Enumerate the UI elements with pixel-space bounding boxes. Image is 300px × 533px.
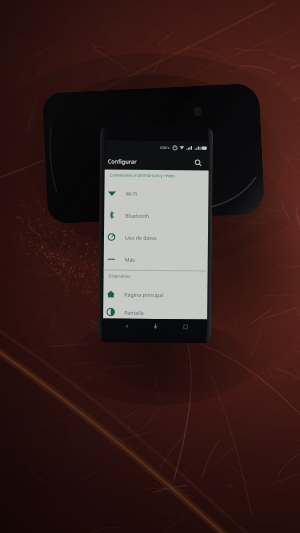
button[interactable]: Inicio xyxy=(148,319,162,333)
staticText: 5:49 xyxy=(199,145,207,150)
button[interactable]: Pantalla xyxy=(103,304,207,320)
staticText: Wi-Fi xyxy=(125,190,137,197)
button[interactable]: Buscar xyxy=(192,156,205,169)
staticText: Más xyxy=(125,256,136,263)
staticText: Configurar xyxy=(108,157,137,166)
staticText: 63B/s xyxy=(160,145,170,150)
staticText: Conexiones inalámbricas y redes xyxy=(110,172,176,179)
staticText: Dispositivo xyxy=(108,273,132,280)
staticText: Pantalla xyxy=(124,309,144,316)
staticText: Uso de datos xyxy=(125,234,157,241)
button[interactable]: Wi-Fi xyxy=(104,181,208,205)
button[interactable]: Página principal xyxy=(103,282,207,306)
button[interactable]: Atrás xyxy=(119,319,133,333)
staticText: Bluetooth xyxy=(125,212,150,219)
button[interactable]: Uso de datos xyxy=(104,225,208,249)
staticText: Página principal xyxy=(124,291,164,298)
button[interactable]: Bluetooth xyxy=(104,203,208,227)
button[interactable]: Recientes xyxy=(178,319,192,333)
button[interactable]: Más xyxy=(104,247,208,271)
